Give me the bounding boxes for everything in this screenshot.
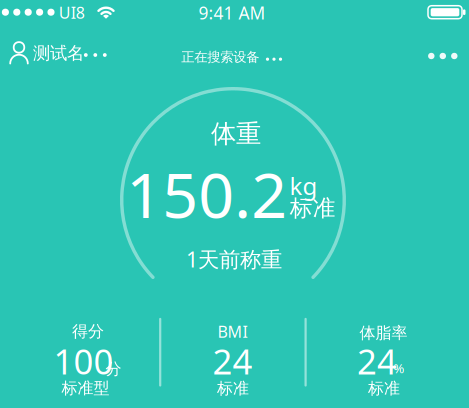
button[interactable]: 测试名 [10, 41, 108, 63]
staticText: 标准 [217, 379, 249, 398]
staticText: 9:41 AM [198, 1, 265, 24]
staticText: 24 [357, 338, 397, 384]
staticText: 体脂率 [359, 323, 407, 343]
staticText: 标准型 [62, 378, 110, 398]
staticText: 1天前称重 [186, 245, 282, 273]
staticText: UI8 [59, 2, 85, 23]
staticText: 24 [212, 338, 252, 384]
staticText: % [393, 359, 404, 377]
staticText: 测试名 [33, 43, 84, 64]
staticText: kg [289, 170, 317, 202]
staticText: 体重 [211, 118, 261, 149]
staticText: 得分 [72, 322, 104, 341]
staticText: 正在搜索设备 [181, 49, 259, 65]
staticText: 标准 [368, 379, 400, 398]
button[interactable]: More [428, 52, 458, 60]
staticText: BMI [217, 321, 247, 342]
staticText: 标准 [290, 194, 336, 222]
staticText: 150.2 [126, 152, 287, 235]
staticText: 100 [53, 338, 113, 384]
staticText: 分 [106, 359, 122, 379]
